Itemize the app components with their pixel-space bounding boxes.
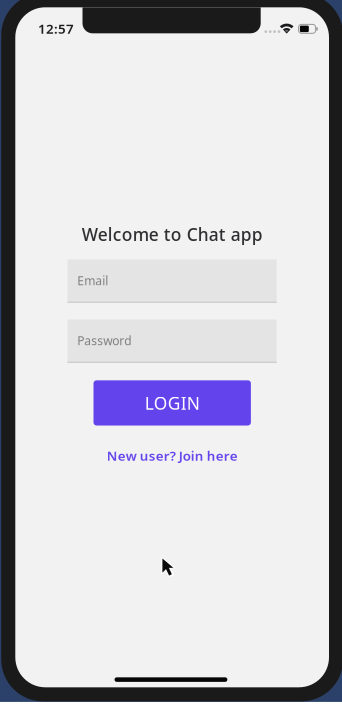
staticText: 12:57	[38, 20, 74, 37]
staticText: New user? Join here	[107, 447, 238, 464]
button[interactable]: LOGIN	[93, 380, 251, 425]
button[interactable]: New user? Join here	[15, 448, 329, 464]
button[interactable]: Password	[67, 319, 277, 363]
staticText: Password	[77, 332, 131, 348]
button[interactable]: Email	[67, 259, 277, 303]
staticText: LOGIN	[145, 391, 200, 414]
staticText: Email	[77, 272, 108, 288]
staticText: Welcome to Chat app	[82, 223, 263, 246]
